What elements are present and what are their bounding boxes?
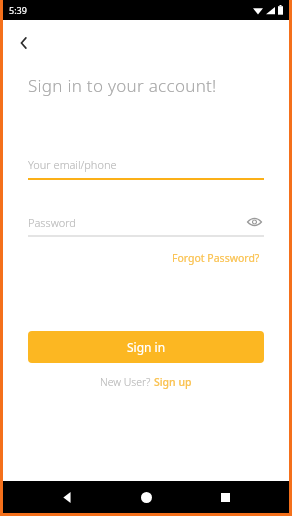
button[interactable]: Password: [28, 212, 264, 237]
button[interactable]: Sign up: [154, 375, 192, 389]
button[interactable]: Home: [131, 482, 161, 512]
button[interactable]: Back: [52, 482, 82, 512]
button[interactable]: Recents: [210, 482, 240, 512]
staticText: Password: [28, 215, 244, 230]
button[interactable]: Your email/phone: [28, 157, 264, 180]
staticText: Sign up: [154, 375, 192, 389]
button[interactable]: Back: [9, 28, 39, 58]
staticText: Your email/phone: [28, 157, 117, 172]
button[interactable]: Show password: [244, 212, 264, 232]
button[interactable]: Forgot Password?: [168, 247, 264, 269]
button[interactable]: Sign in: [28, 331, 264, 363]
staticText: Forgot Password?: [172, 251, 260, 265]
staticText: 5:39: [9, 4, 27, 16]
staticText: Sign in: [127, 339, 166, 355]
staticText: Sign in to your account!: [28, 74, 217, 97]
staticText: New User?: [100, 375, 154, 389]
